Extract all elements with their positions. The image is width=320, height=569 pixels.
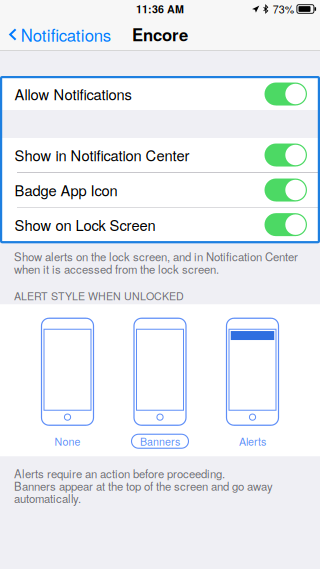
button[interactable]: Banners <box>114 318 206 448</box>
staticText: automatically. <box>14 490 81 506</box>
staticText: Encore <box>132 23 188 46</box>
button[interactable]: Allow Notifications <box>2 77 318 111</box>
staticText: Banners <box>140 434 180 449</box>
button[interactable]: Badge App Icon <box>2 173 318 207</box>
button[interactable]: Alerts <box>206 318 299 448</box>
staticText: ALERT STYLE WHEN UNLOCKED <box>14 288 184 303</box>
staticText: Show in Notification Center <box>14 144 189 165</box>
button[interactable]: Show on Lock Screen <box>2 208 318 242</box>
staticText: Notifications <box>21 23 111 46</box>
staticText: Banners appear at the top of the screen … <box>14 478 273 494</box>
staticText: Show on Lock Screen <box>14 214 155 235</box>
staticText: Allow Notifications <box>14 83 131 104</box>
staticText: None <box>54 434 80 449</box>
button[interactable]: Show in Notification Center <box>2 138 318 172</box>
staticText: Alerts require an action before proceedi… <box>14 465 225 481</box>
button[interactable]: Notifications <box>0 18 119 51</box>
staticText: 73% <box>273 1 294 17</box>
staticText: 11:36 AM <box>136 1 184 17</box>
staticText: Show alerts on the lock screen, and in N… <box>14 248 298 264</box>
button[interactable]: None <box>21 318 114 448</box>
staticText: Badge App Icon <box>14 179 117 200</box>
staticText: when it is accessed from the lock screen… <box>14 261 219 277</box>
staticText: Alerts <box>239 434 266 449</box>
